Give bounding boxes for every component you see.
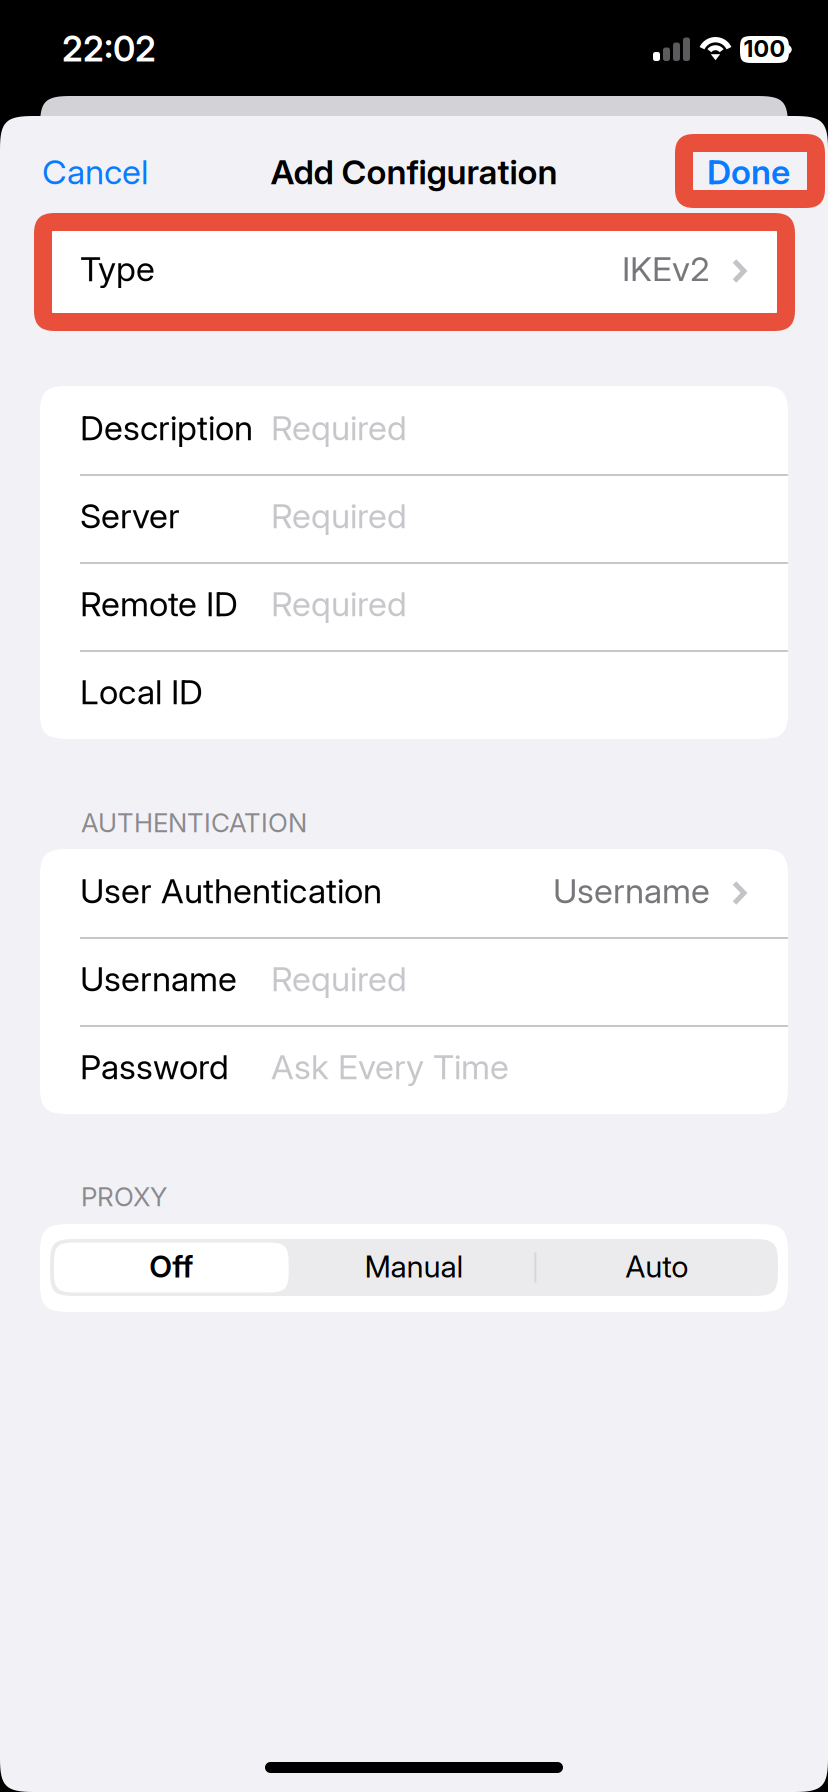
staticText: Type bbox=[80, 248, 155, 289]
button[interactable]: Username bbox=[40, 937, 788, 1025]
staticText: User Authentication bbox=[80, 870, 382, 911]
staticText: Local ID bbox=[80, 671, 203, 712]
button[interactable]: User Authentication bbox=[40, 849, 788, 937]
button[interactable]: Server bbox=[40, 474, 788, 562]
staticText: Remote ID bbox=[80, 583, 238, 624]
staticText: PROXY bbox=[81, 1181, 167, 1212]
button[interactable]: Manual bbox=[293, 1239, 535, 1296]
staticText: AUTHENTICATION bbox=[81, 807, 307, 838]
staticText: Username bbox=[80, 958, 237, 999]
staticText: Required bbox=[271, 583, 407, 624]
staticText: IKEv2 bbox=[622, 248, 710, 289]
staticText: Description bbox=[80, 407, 253, 448]
button[interactable]: Auto bbox=[535, 1239, 778, 1296]
staticText: Cancel bbox=[42, 151, 148, 192]
button[interactable]: Local ID bbox=[40, 650, 788, 738]
staticText: Required bbox=[271, 495, 407, 536]
button[interactable]: Description bbox=[40, 386, 788, 474]
staticText: Done bbox=[707, 151, 790, 192]
staticText: 22:02 bbox=[62, 28, 156, 70]
staticText: Manual bbox=[364, 1248, 463, 1285]
button[interactable]: Off bbox=[50, 1239, 293, 1296]
staticText: Required bbox=[271, 958, 407, 999]
staticText: Off bbox=[149, 1248, 193, 1285]
button[interactable]: Remote ID bbox=[40, 562, 788, 650]
button[interactable]: Password bbox=[40, 1025, 788, 1113]
staticText: Add Configuration bbox=[270, 151, 557, 192]
staticText: Ask Every Time bbox=[271, 1046, 509, 1087]
staticText: Required bbox=[271, 407, 407, 448]
staticText: 100 bbox=[743, 34, 785, 63]
staticText: Password bbox=[80, 1046, 229, 1087]
button[interactable]: Cancel bbox=[0, 126, 222, 218]
staticText: Username bbox=[553, 870, 710, 911]
button[interactable]: Done bbox=[610, 126, 828, 218]
staticText: Server bbox=[80, 495, 180, 536]
button[interactable]: Type bbox=[40, 227, 788, 315]
staticText: Auto bbox=[625, 1248, 688, 1285]
